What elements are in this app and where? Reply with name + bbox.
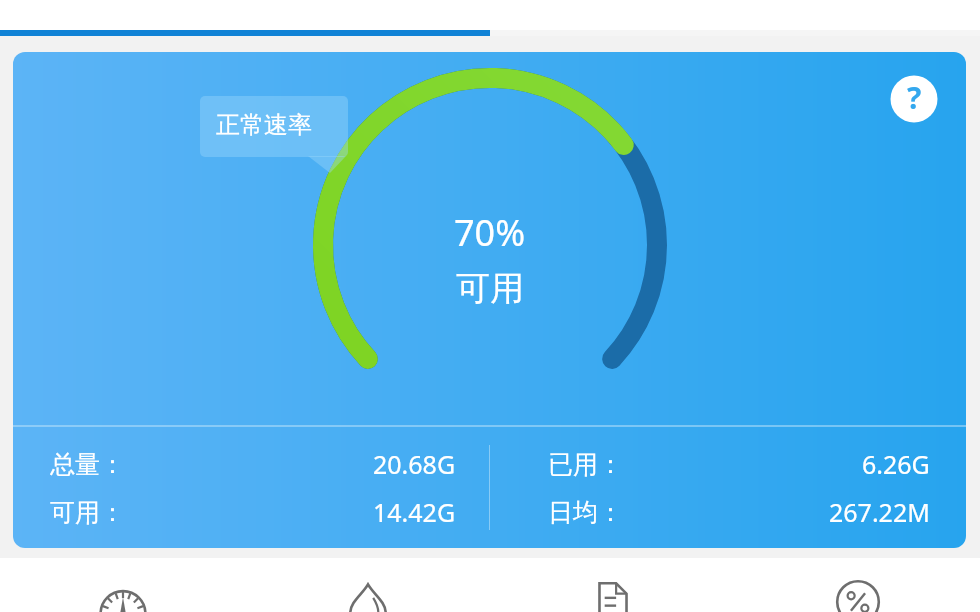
- staticText: 6.26G: [862, 447, 930, 481]
- button[interactable]: Speed test: [0, 558, 245, 612]
- staticText: 可用: [456, 267, 524, 310]
- staticText: 总量：: [50, 449, 125, 480]
- button[interactable]: 总量：: [50, 447, 456, 481]
- staticText: ?: [907, 77, 922, 118]
- button[interactable]: 日均：: [548, 495, 930, 529]
- button[interactable]: Help: [889, 74, 939, 124]
- staticText: 20.68G: [373, 447, 456, 481]
- staticText: 正常速率: [216, 110, 312, 140]
- button[interactable]: Records: [490, 558, 735, 612]
- staticText: 267.22M: [829, 495, 930, 529]
- staticText: 70%: [454, 208, 526, 257]
- button[interactable]: 已用：: [548, 447, 930, 481]
- staticText: 可用：: [50, 497, 125, 528]
- staticText: 14.42G: [373, 495, 456, 529]
- staticText: 已用：: [548, 449, 623, 480]
- button[interactable]: Usage: [735, 558, 980, 612]
- button[interactable]: 正常速率: [13, 52, 966, 548]
- staticText: 日均：: [548, 497, 623, 528]
- button[interactable]: 可用：: [50, 495, 456, 529]
- button[interactable]: Data saver: [245, 558, 490, 612]
